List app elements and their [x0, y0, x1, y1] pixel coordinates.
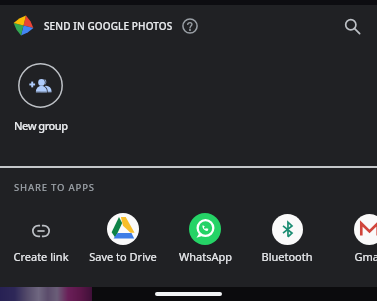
staticText: SHARE TO APPS — [14, 181, 95, 194]
staticText: Bluetooth — [261, 249, 313, 264]
staticText: Save to Drive — [89, 249, 157, 264]
button[interactable]: Help — [178, 14, 202, 38]
button[interactable]: WhatsApp — [164, 212, 246, 264]
staticText: Gmail — [354, 249, 377, 264]
button[interactable]: Bluetooth — [246, 212, 328, 264]
button[interactable]: New group — [2, 48, 79, 133]
button[interactable]: Search — [338, 12, 366, 40]
staticText: Create link — [13, 249, 69, 264]
button[interactable]: Gmail — [328, 212, 377, 264]
staticText: WhatsApp — [179, 249, 232, 264]
staticText: SEND IN GOOGLE PHOTOS — [44, 19, 173, 33]
button[interactable]: Save to Drive — [82, 212, 164, 264]
staticText: New group — [14, 118, 68, 133]
button[interactable]: Create link — [0, 212, 82, 264]
